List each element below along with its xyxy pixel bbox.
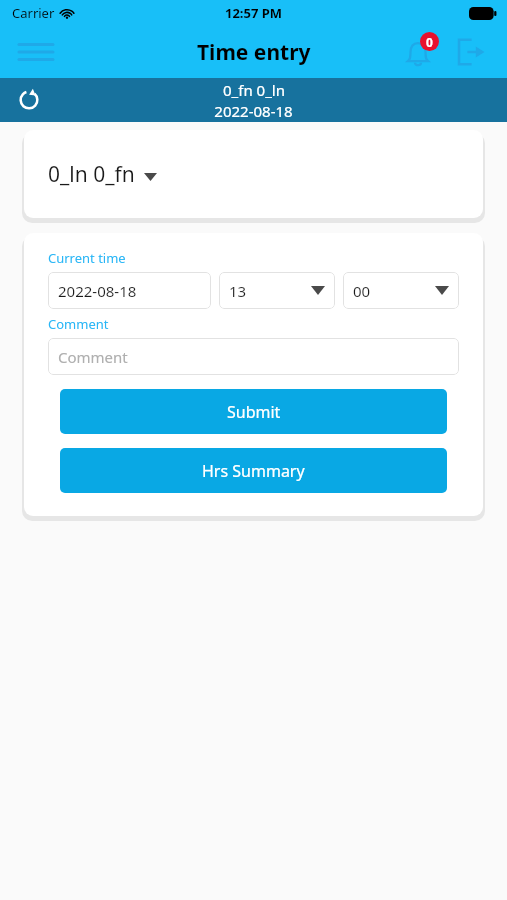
staticText: Hrs Summary [202, 460, 305, 482]
button[interactable]: Submit [60, 389, 447, 434]
staticText: 13 [229, 281, 247, 301]
button[interactable]: Log out [445, 26, 497, 78]
staticText: Carrier [12, 4, 55, 22]
staticText: Comment [48, 315, 109, 333]
staticText: Comment [58, 347, 128, 367]
staticText: Time entry [197, 38, 311, 67]
button[interactable]: Menu [12, 28, 60, 76]
button[interactable]: 00 [343, 272, 459, 309]
staticText: 0_fn 0_ln [223, 80, 285, 100]
button[interactable]: 13 [219, 272, 335, 309]
staticText: 0 [426, 34, 433, 50]
button[interactable]: Comment [48, 338, 459, 375]
staticText: 00 [353, 281, 371, 301]
button[interactable]: Notifications [393, 26, 445, 78]
button[interactable]: Refresh [8, 79, 50, 121]
button[interactable]: 0_ln 0_fn [24, 130, 483, 218]
staticText: 0_ln 0_fn [48, 160, 135, 189]
staticText: Current time [48, 249, 126, 267]
staticText: 2022-08-18 [214, 101, 293, 121]
button[interactable]: Hrs Summary [60, 448, 447, 493]
button[interactable]: 2022-08-18 [48, 272, 211, 309]
staticText: Submit [227, 401, 281, 423]
staticText: 12:57 PM [225, 4, 283, 22]
staticText: 2022-08-18 [58, 281, 137, 301]
